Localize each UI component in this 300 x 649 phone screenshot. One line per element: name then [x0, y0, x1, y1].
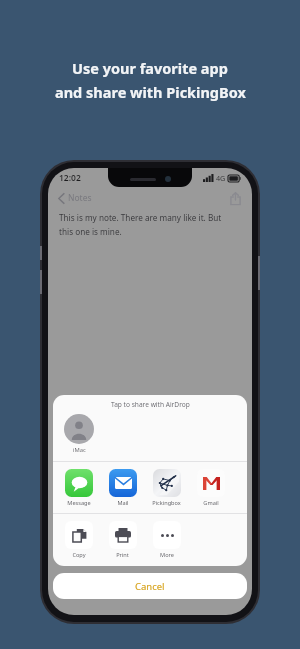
staticText: Notes — [68, 192, 92, 204]
button[interactable]: More — [150, 521, 183, 559]
staticText: Mail — [117, 499, 129, 507]
staticText: Use your favorite app — [72, 58, 228, 78]
button[interactable]: iMac — [62, 412, 96, 456]
staticText: More — [160, 551, 174, 559]
staticText: Print — [116, 551, 129, 559]
button[interactable]: Notes — [56, 190, 94, 206]
button[interactable]: Pickingbox — [150, 469, 183, 507]
staticText: 4G — [216, 173, 226, 183]
button[interactable]: Print — [106, 521, 139, 559]
button[interactable]: Message — [62, 469, 95, 507]
staticText: This is my note. There are many like it.… — [59, 212, 222, 223]
button[interactable]: Share — [226, 189, 244, 207]
button[interactable]: Copy — [62, 521, 95, 559]
staticText: this one is mine. — [59, 226, 122, 237]
button[interactable]: Gmail — [194, 469, 227, 507]
staticText: Gmail — [203, 499, 219, 507]
staticText: iMac — [73, 446, 86, 454]
button[interactable]: Cancel — [53, 573, 247, 599]
staticText: 12:02 — [59, 172, 81, 184]
staticText: Copy — [72, 551, 86, 559]
staticText: Tap to share with AirDrop — [111, 400, 190, 409]
staticText: Cancel — [135, 580, 165, 593]
staticText: Pickingbox — [152, 499, 181, 507]
staticText: and share with PickingBox — [55, 82, 246, 102]
staticText: Message — [67, 499, 91, 507]
button[interactable]: Mail — [106, 469, 139, 507]
